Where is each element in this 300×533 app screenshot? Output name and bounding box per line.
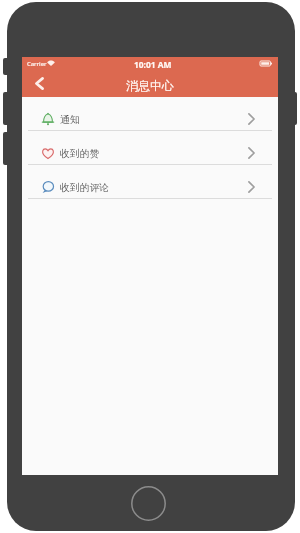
staticText: 10:01 AM (134, 59, 172, 70)
staticText: 消息中心 (126, 78, 174, 93)
button[interactable]: 通知 (22, 97, 278, 130)
staticText: 通知 (60, 114, 80, 126)
button[interactable]: 收到的评论 (22, 165, 278, 198)
staticText: 收到的评论 (60, 182, 109, 194)
staticText: Carrier (27, 60, 47, 68)
staticText: 收到的赞 (60, 148, 100, 160)
button[interactable]: Back (22, 68, 56, 98)
button[interactable]: 收到的赞 (22, 131, 278, 164)
